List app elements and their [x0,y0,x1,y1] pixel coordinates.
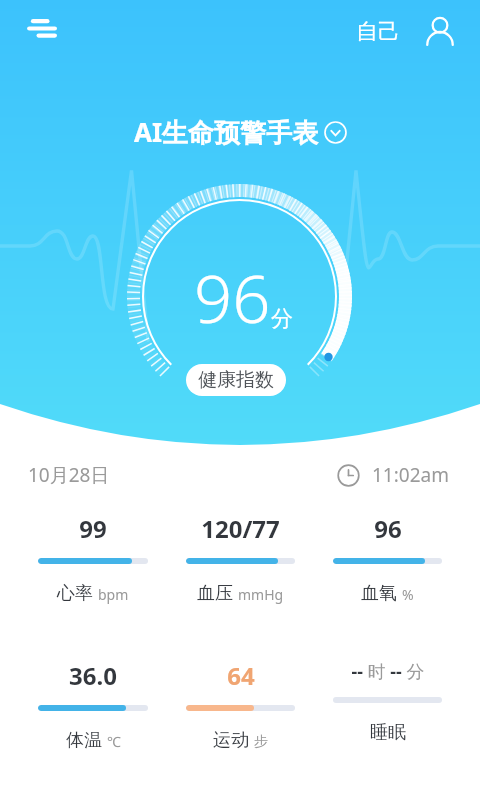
staticText: 自己 [356,18,400,46]
staticText: 96 [194,251,271,342]
button[interactable]: 64 [167,659,314,752]
button[interactable]: -- 时 -- 分 [314,659,461,744]
staticText: 步 [254,733,268,751]
staticText: 11:02am [372,462,449,488]
staticText: 99 [79,512,107,545]
staticText: bpm [98,585,129,604]
staticText: 分 [271,305,293,333]
staticText: % [402,585,414,604]
staticText: 心率 [57,582,93,605]
staticText: 运动 [213,729,249,752]
button[interactable]: 99 [19,512,167,605]
staticText: 血压 [197,582,233,605]
staticText: 36.0 [69,659,117,692]
staticText: 10月28日 [28,462,110,488]
button[interactable]: Profile [423,15,457,49]
button[interactable]: 健康指数 [186,364,286,396]
button[interactable]: Menu [13,6,61,54]
staticText: 120/77 [201,512,280,545]
staticText: 血氧 [361,582,397,605]
button[interactable]: 96 [314,512,461,605]
staticText: 96 [374,512,402,545]
staticText: -- 时 -- 分 [351,659,425,684]
staticText: 睡眠 [370,721,406,744]
staticText: ℃ [107,732,121,751]
button[interactable]: 120/77 [167,512,314,605]
staticText: 健康指数 [198,368,274,392]
staticText: 64 [227,659,255,692]
staticText: AI生命预警手表 [134,114,319,150]
staticText: mmHg [238,585,284,604]
button[interactable]: 自己 [353,12,403,52]
button[interactable]: 36.0 [19,659,167,752]
staticText: 体温 [66,729,102,752]
